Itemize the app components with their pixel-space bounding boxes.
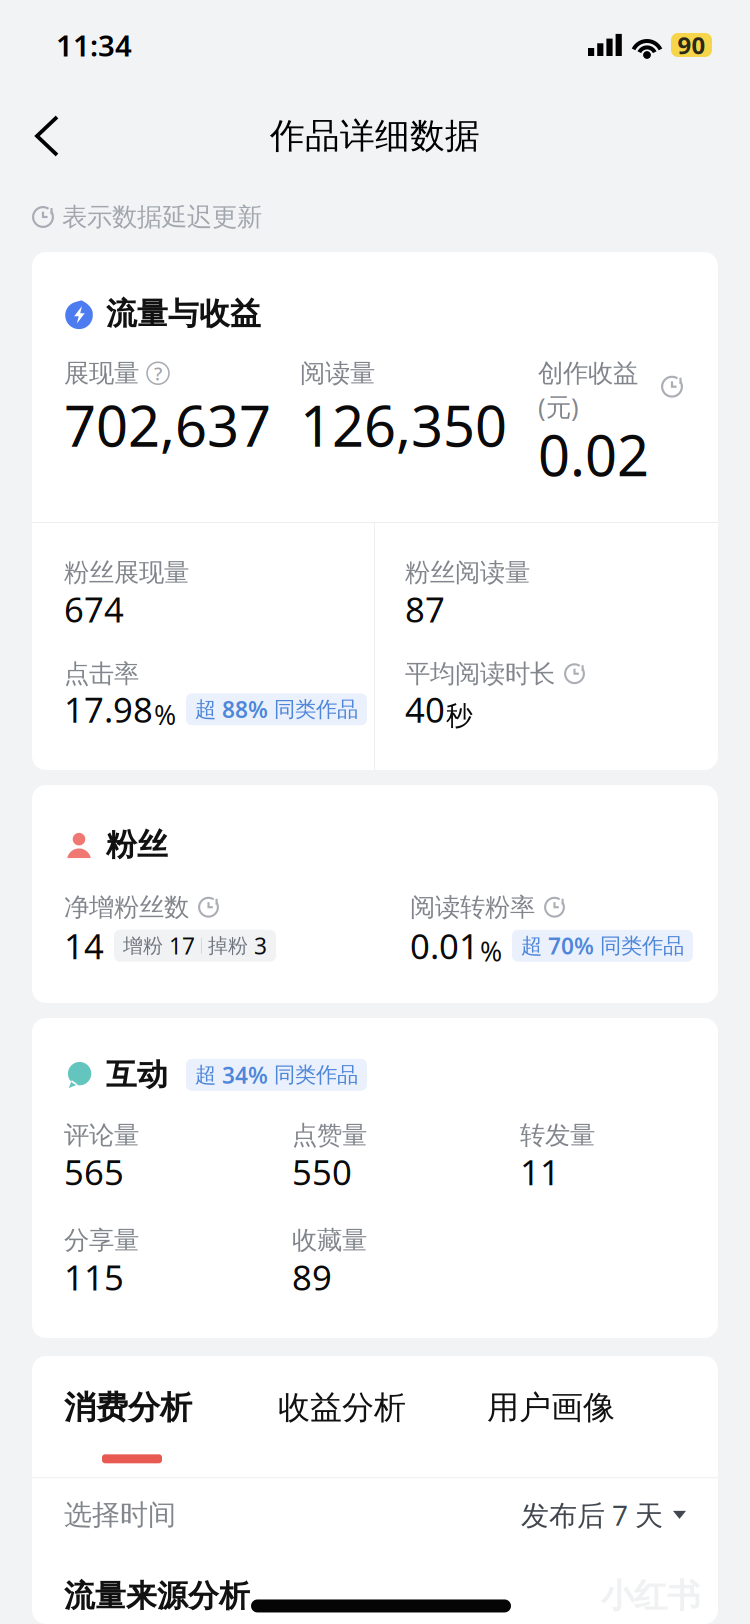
staticText: 用户画像 bbox=[487, 1388, 615, 1427]
staticText: 点击率 bbox=[64, 658, 139, 689]
staticText: 流量与收益 bbox=[106, 295, 261, 333]
staticText: 674 bbox=[64, 586, 124, 632]
staticText: 分享量 bbox=[64, 1225, 139, 1256]
staticText: 超 bbox=[521, 933, 542, 959]
staticText: 17.98 bbox=[64, 686, 153, 732]
staticText: 掉粉 bbox=[208, 933, 248, 958]
staticText: 选择时间 bbox=[64, 1498, 176, 1532]
staticText: 评论量 bbox=[64, 1120, 139, 1151]
staticText: 0.02 bbox=[538, 417, 649, 492]
staticText: 创作收益 bbox=[538, 358, 638, 389]
staticText: 超 bbox=[195, 696, 216, 722]
staticText: 展现量 bbox=[64, 358, 139, 389]
staticText: 净增粉丝数 bbox=[64, 892, 189, 923]
staticText: 87 bbox=[405, 586, 445, 632]
button[interactable]: 收益分析 bbox=[278, 1388, 487, 1463]
staticText: 秒 bbox=[446, 699, 473, 732]
staticText: 阅读量 bbox=[300, 358, 375, 389]
staticText: 115 bbox=[64, 1254, 124, 1300]
staticText: 0.01 bbox=[410, 923, 479, 969]
staticText: 收益分析 bbox=[278, 1388, 406, 1427]
staticText: 小红书 bbox=[601, 1575, 700, 1616]
staticText: 表示数据延迟更新 bbox=[62, 201, 262, 232]
staticText: 17 bbox=[169, 931, 195, 961]
staticText: 88% bbox=[222, 694, 268, 724]
button[interactable]: 发布后 7 天 bbox=[521, 1496, 686, 1533]
button[interactable]: 用户画像 bbox=[487, 1388, 687, 1463]
staticText: 互动 bbox=[106, 1056, 168, 1094]
staticText: 70% bbox=[548, 931, 594, 961]
staticText: ? bbox=[154, 361, 162, 386]
button[interactable]: 消费分析 bbox=[64, 1388, 278, 1463]
staticText: 126,350 bbox=[300, 388, 507, 462]
staticText: 粉丝阅读量 bbox=[405, 557, 530, 588]
staticText: 89 bbox=[292, 1254, 332, 1300]
staticText: 点赞量 bbox=[292, 1120, 367, 1151]
staticText: 增粉 bbox=[123, 933, 163, 958]
staticText: 流量来源分析 bbox=[64, 1577, 250, 1615]
staticText: 11:34 bbox=[56, 25, 132, 64]
staticText: 发布后 7 天 bbox=[521, 1496, 663, 1533]
staticText: 14 bbox=[64, 923, 104, 969]
staticText: 34% bbox=[222, 1060, 268, 1090]
staticText: 同类作品 bbox=[600, 933, 684, 959]
staticText: 收藏量 bbox=[292, 1225, 367, 1256]
staticText: 粉丝 bbox=[106, 826, 168, 864]
staticText: % bbox=[480, 933, 502, 969]
staticText: 702,637 bbox=[64, 388, 271, 462]
staticText: % bbox=[154, 697, 176, 732]
staticText: 90 bbox=[677, 29, 705, 61]
button[interactable]: Back bbox=[0, 102, 86, 170]
staticText: 565 bbox=[64, 1149, 124, 1195]
staticText: 转发量 bbox=[520, 1120, 595, 1151]
staticText: 550 bbox=[292, 1149, 352, 1195]
staticText: 粉丝展现量 bbox=[64, 557, 189, 588]
staticText: 作品详细数据 bbox=[270, 115, 480, 157]
staticText: 3 bbox=[254, 931, 267, 961]
staticText: 平均阅读时长 bbox=[405, 658, 555, 689]
staticText: 阅读转粉率 bbox=[410, 892, 535, 923]
staticText: 40 bbox=[405, 686, 445, 732]
staticText: 超 bbox=[195, 1062, 216, 1088]
staticText: 同类作品 bbox=[274, 696, 358, 722]
staticText: 同类作品 bbox=[274, 1062, 358, 1088]
staticText: 11 bbox=[520, 1149, 560, 1195]
staticText: 消费分析 bbox=[64, 1388, 192, 1427]
staticText: (元) bbox=[538, 390, 579, 423]
